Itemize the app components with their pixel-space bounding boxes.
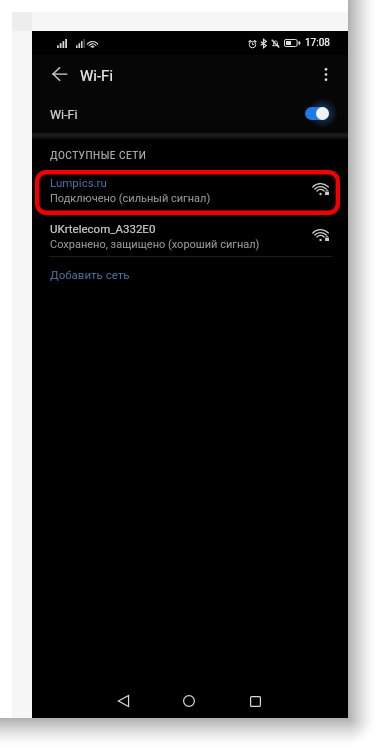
staticText: 17:08 — [305, 37, 330, 49]
staticText: Wi-Fi — [50, 107, 78, 122]
button[interactable]: Wi-Fi — [32, 94, 348, 134]
button[interactable]: Home — [172, 684, 206, 718]
button[interactable]: Back — [106, 684, 140, 718]
staticText: Сохранено, защищено (хороший сигнал) — [50, 238, 260, 251]
staticText: Wi-Fi — [80, 67, 114, 85]
staticText: UKrtelecom_A332E0 — [50, 222, 156, 235]
button[interactable]: Recents — [238, 684, 272, 718]
staticText: Lumpics.ru — [50, 176, 107, 189]
staticText: Подключено (сильный сигнал) — [50, 192, 211, 205]
staticText: ДОСТУПНЫЕ СЕТИ — [50, 150, 147, 162]
staticText: Добавить сеть — [50, 268, 130, 281]
button[interactable]: Lumpics.ru — [32, 170, 348, 214]
button[interactable]: More options — [308, 56, 344, 92]
button[interactable]: Добавить сеть — [32, 258, 348, 290]
button[interactable]: UKrtelecom_A332E0 — [32, 216, 348, 260]
button[interactable]: Back — [41, 56, 77, 92]
